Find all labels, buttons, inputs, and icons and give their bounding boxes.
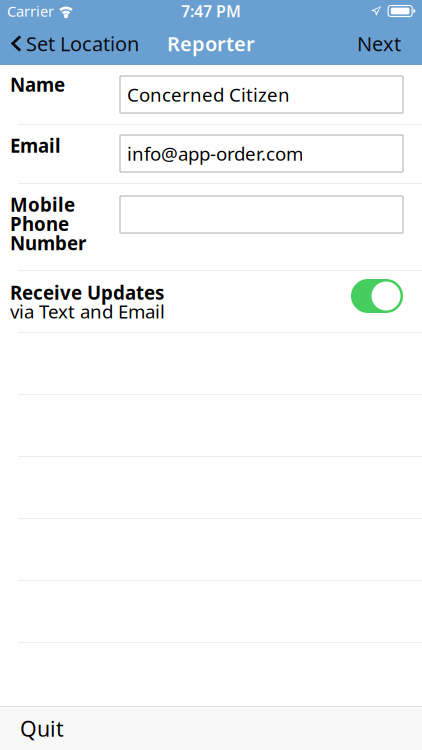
staticText: info@app-order.com bbox=[127, 141, 303, 166]
staticText: Mobile bbox=[10, 192, 75, 217]
button[interactable]: Next bbox=[339, 22, 422, 65]
staticText: Concerned Citizen bbox=[127, 82, 290, 107]
staticText: Number bbox=[10, 231, 86, 255]
staticText: Receive Updates bbox=[10, 280, 164, 305]
staticText: Phone bbox=[10, 211, 69, 236]
button[interactable]: Email bbox=[120, 135, 403, 172]
staticText: Carrier bbox=[7, 1, 54, 21]
button[interactable]: Set Location bbox=[0, 22, 147, 65]
staticText: via Text and Email bbox=[10, 299, 165, 324]
staticText: 7:47 PM bbox=[181, 0, 241, 22]
staticText: Set Location bbox=[26, 30, 139, 57]
button[interactable]: Quit bbox=[0, 706, 422, 750]
button[interactable]: Mobile Phone Number bbox=[120, 196, 403, 233]
staticText: Email bbox=[10, 133, 61, 158]
staticText: Next bbox=[357, 30, 401, 57]
staticText: Quit bbox=[20, 714, 64, 743]
staticText: Reporter bbox=[167, 30, 255, 57]
staticText: Name bbox=[10, 72, 65, 97]
button[interactable]: Name bbox=[120, 76, 403, 113]
button[interactable]: Receive Updates, on bbox=[351, 279, 403, 313]
